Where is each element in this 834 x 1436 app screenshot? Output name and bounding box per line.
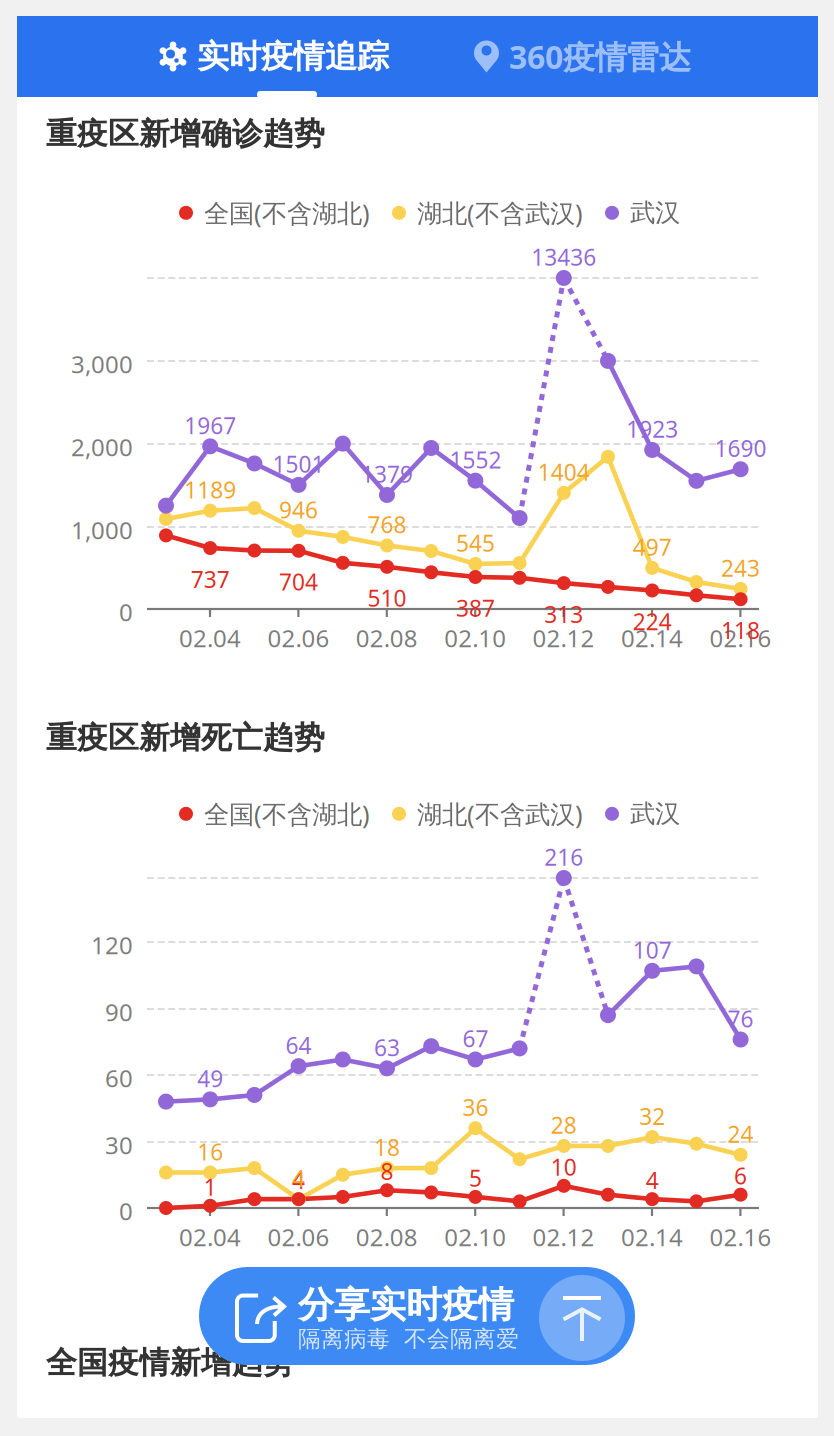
staticText: 4 (292, 1163, 305, 1193)
staticText: 1501 (273, 449, 325, 479)
staticText: 02.16 (709, 622, 771, 654)
staticText: 90 (105, 996, 133, 1028)
staticText: 1404 (538, 457, 590, 487)
staticText: 18 (374, 1132, 400, 1162)
staticText: 1923 (626, 414, 678, 444)
staticText: 16 (197, 1136, 223, 1167)
staticText: 946 (279, 495, 318, 525)
staticText: 隔离病毒 不会隔离爱 (298, 1325, 519, 1353)
staticText: 0 (119, 1195, 133, 1227)
staticText: 0 (119, 596, 133, 628)
staticText: 216 (544, 842, 583, 872)
staticText: 02.08 (356, 622, 418, 654)
staticText: 重疫区新增确诊趋势 (46, 115, 325, 153)
button[interactable]: 实时疫情追踪 (158, 16, 538, 97)
staticText: 02.16 (709, 1221, 771, 1253)
staticText: 64 (286, 1030, 312, 1060)
staticText: 02.06 (267, 622, 329, 654)
staticText: 02.10 (444, 622, 506, 654)
staticText: 重疫区新增死亡趋势 (46, 719, 325, 757)
staticText: 313 (544, 599, 583, 629)
staticText: 510 (367, 583, 406, 613)
staticText: 全国疫情新增趋势 (46, 1344, 294, 1382)
staticText: 1967 (184, 410, 236, 440)
staticText: 4 (292, 1165, 305, 1195)
staticText: 10 (551, 1152, 577, 1182)
staticText: 02.04 (179, 622, 241, 654)
staticText: 1 (204, 1172, 217, 1202)
staticText: 02.12 (533, 622, 595, 654)
staticText: 60 (105, 1062, 133, 1094)
staticText: 243 (721, 553, 760, 583)
staticText: 76 (728, 1003, 754, 1034)
staticText: 1379 (361, 459, 413, 489)
staticText: 2,000 (71, 431, 133, 463)
staticText: 32 (639, 1101, 665, 1131)
staticText: 湖北(不含武汉) (417, 797, 583, 831)
staticText: 全国(不含湖北) (204, 797, 370, 831)
staticText: 545 (456, 528, 495, 558)
staticText: 武汉 (630, 197, 680, 228)
staticText: 1,000 (71, 514, 133, 546)
staticText: 67 (462, 1023, 488, 1054)
staticText: 武汉 (630, 798, 680, 829)
button[interactable]: 360疫情雷达 (474, 16, 818, 97)
staticText: 6 (734, 1161, 747, 1191)
staticText: 13436 (531, 242, 596, 272)
staticText: 02.06 (267, 1221, 329, 1253)
staticText: 02.08 (356, 1221, 418, 1253)
staticText: 497 (633, 532, 672, 562)
staticText: 湖北(不含武汉) (417, 196, 583, 230)
staticText: 737 (191, 564, 230, 594)
staticText: 02.14 (621, 622, 683, 654)
staticText: 02.04 (179, 1221, 241, 1253)
staticText: 02.12 (533, 1221, 595, 1253)
staticText: 360疫情雷达 (509, 35, 691, 78)
staticText: 02.14 (621, 1221, 683, 1253)
staticText: 120 (91, 929, 133, 961)
staticText: 02.10 (444, 1221, 506, 1253)
staticText: 107 (633, 935, 672, 965)
staticText: 全国(不含湖北) (204, 196, 370, 230)
staticText: 118 (721, 615, 760, 645)
staticText: 30 (105, 1129, 133, 1161)
staticText: 实时疫情追踪 (197, 37, 389, 76)
staticText: 704 (279, 567, 318, 597)
staticText: 1189 (184, 475, 236, 505)
staticText: 768 (367, 509, 406, 540)
staticText: 387 (456, 593, 495, 623)
staticText: 3,000 (71, 348, 133, 380)
staticText: 224 (633, 606, 672, 637)
staticText: 63 (374, 1032, 400, 1062)
staticText: 1552 (449, 445, 501, 475)
staticText: 分享实时疫情 (298, 1283, 514, 1327)
staticText: 49 (197, 1063, 223, 1093)
staticText: 36 (462, 1092, 488, 1122)
staticText: 24 (728, 1119, 754, 1149)
staticText: 28 (551, 1110, 577, 1140)
staticText: 5 (469, 1163, 482, 1193)
staticText: 4 (646, 1165, 659, 1195)
button[interactable]: 分享实时疫情 (199, 1267, 635, 1365)
staticText: 8 (380, 1156, 393, 1186)
staticText: 1690 (715, 433, 767, 463)
